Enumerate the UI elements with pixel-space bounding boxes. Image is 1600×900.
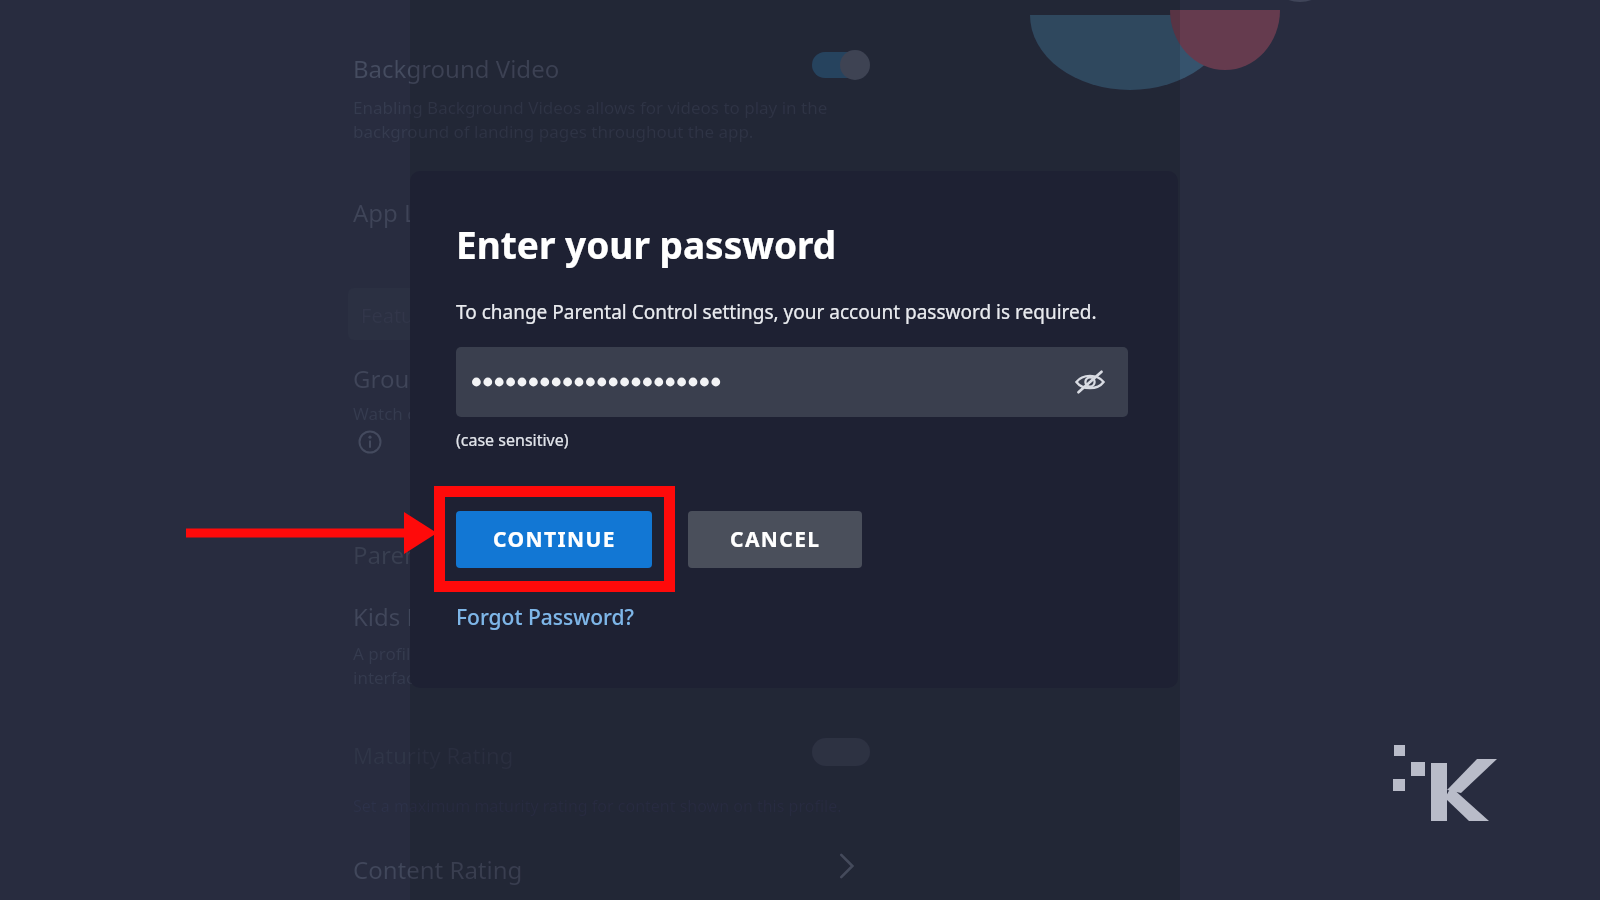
staticText: (case sensitive) — [456, 429, 569, 451]
staticText: Forgot Password? — [456, 603, 634, 632]
staticText: background of landing pages throughout t… — [353, 120, 754, 143]
staticText: Kids Profile — [353, 600, 480, 633]
staticText: Watch content with friends — [353, 402, 568, 425]
staticText: Set a maximum maturity rating for conten… — [353, 795, 842, 817]
staticText: Content Rating — [353, 853, 523, 886]
button[interactable]: Show password — [1068, 360, 1112, 404]
staticText: CONTINUE — [493, 525, 616, 554]
staticText: Enter your password — [456, 219, 837, 269]
staticText: A profile designed for kids with a simpl… — [353, 642, 698, 665]
staticText: App Language — [353, 196, 517, 229]
staticText: Group Watch — [353, 362, 501, 395]
button[interactable]: Forgot Password? — [454, 601, 636, 634]
staticText: To change Parental Control settings, you… — [456, 299, 1097, 325]
staticText: interface and kid friendly content. — [353, 666, 623, 689]
staticText: Featured — [361, 302, 445, 329]
button[interactable]: CONTINUE — [456, 511, 652, 568]
staticText: Maturity Rating — [353, 740, 514, 770]
staticText: CANCEL — [730, 525, 821, 554]
staticText: Enabling Background Videos allows for vi… — [353, 96, 828, 119]
button[interactable]: Show password — [456, 347, 1128, 417]
button[interactable]: CANCEL — [688, 511, 862, 568]
staticText: Background Video — [353, 52, 560, 85]
staticText: Parental Controls — [353, 538, 549, 571]
